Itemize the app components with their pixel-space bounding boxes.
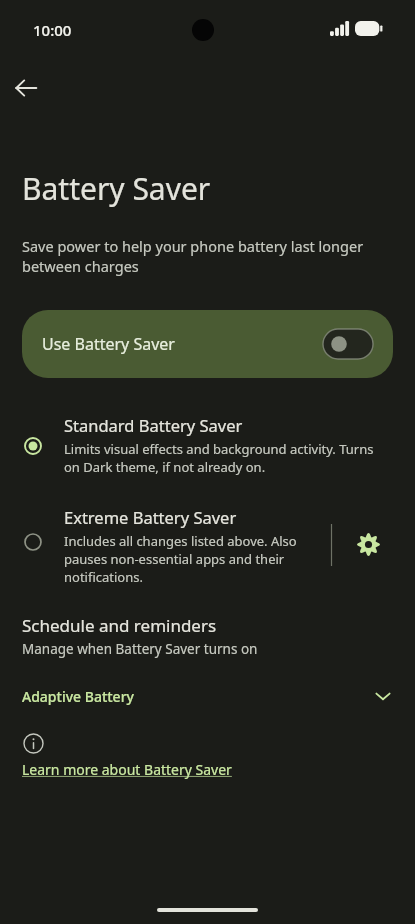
staticText: Save power to help your phone battery la… <box>22 236 394 276</box>
staticText: Includes all changes listed above. Also … <box>64 532 314 586</box>
staticText: Manage when Battery Saver turns on <box>22 640 258 658</box>
button[interactable]: Back <box>6 68 46 108</box>
button[interactable]: Extreme Battery Saver settings <box>346 522 390 566</box>
staticText: Extreme Battery Saver <box>64 506 237 528</box>
staticText: Schedule and reminders <box>22 614 217 637</box>
staticText: Standard Battery Saver <box>64 414 243 436</box>
staticText: Limits visual effects and background act… <box>64 440 384 476</box>
button[interactable]: Learn more about Battery Saver <box>22 758 232 781</box>
button[interactable]: Standard Battery Saver <box>0 405 415 487</box>
staticText: Use Battery Saver <box>42 333 175 355</box>
button[interactable]: Use Battery Saver <box>22 310 393 378</box>
staticText: Adaptive Battery <box>22 687 134 706</box>
staticText: Learn more about Battery Saver <box>22 760 232 779</box>
staticText: 10:00 <box>33 20 72 40</box>
staticText: Battery Saver <box>22 168 211 209</box>
button[interactable]: Adaptive Battery <box>0 676 415 716</box>
button[interactable]: Extreme Battery Saver <box>0 498 330 593</box>
